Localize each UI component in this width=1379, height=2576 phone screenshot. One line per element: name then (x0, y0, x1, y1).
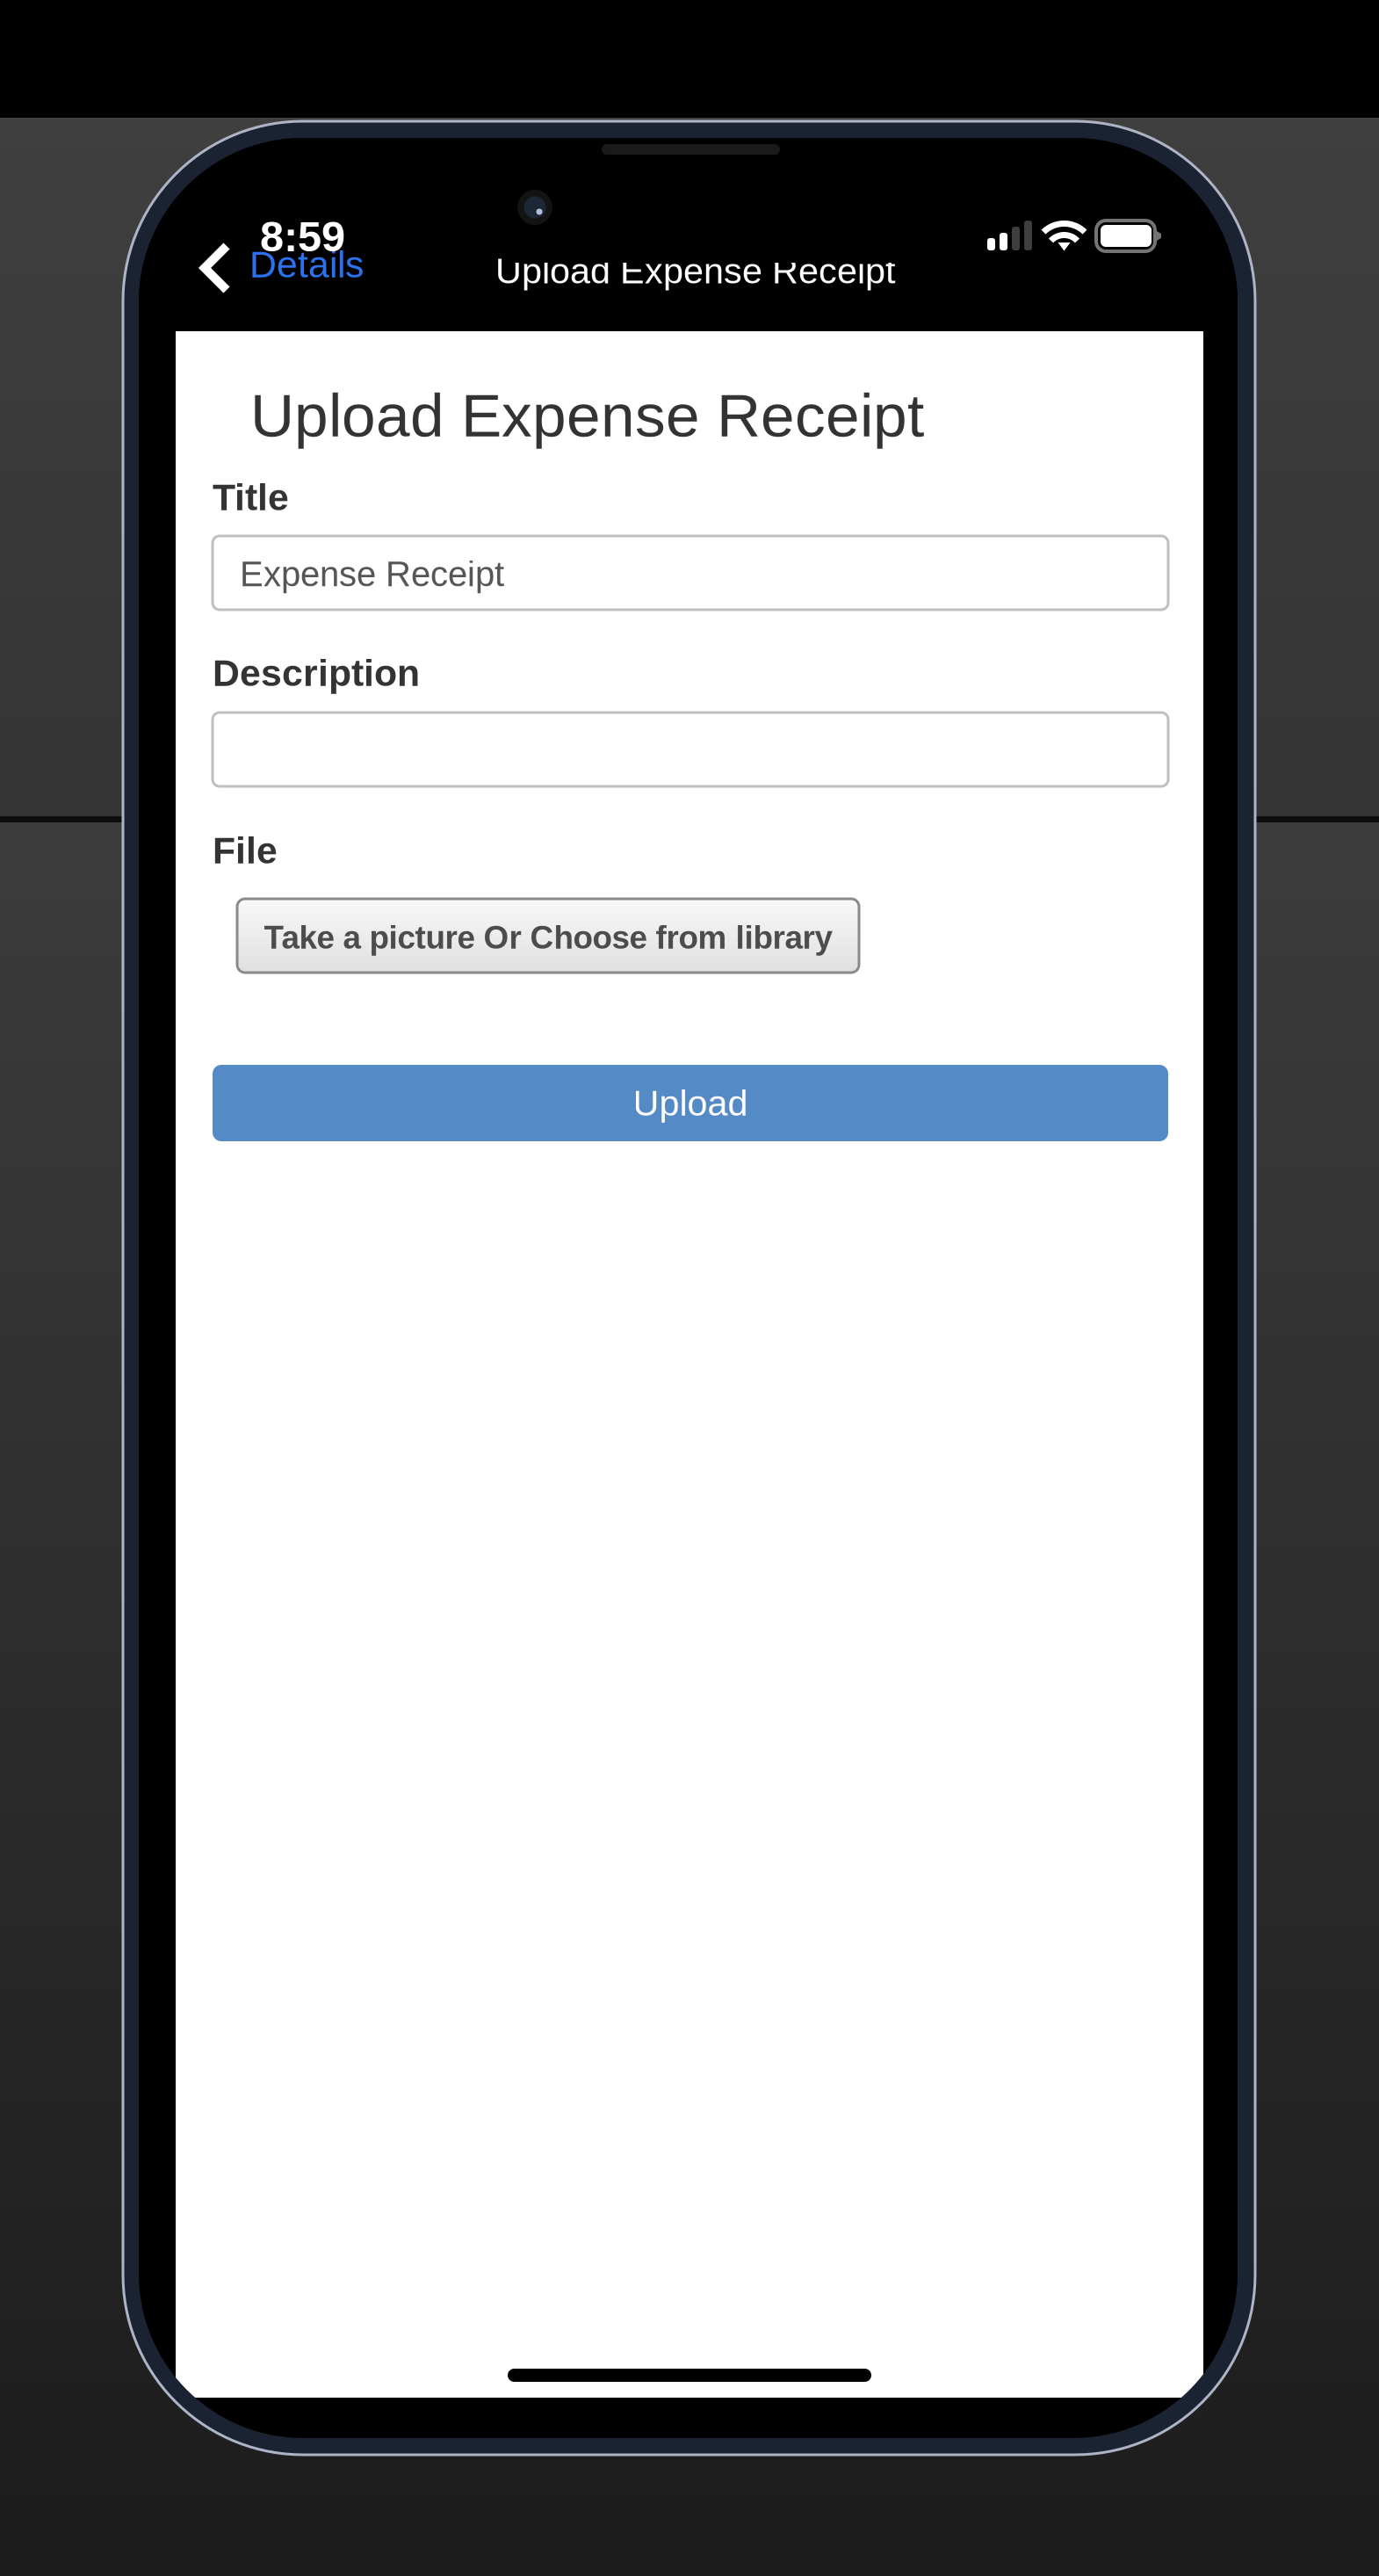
staticText: Upload Expense Receipt (250, 381, 924, 449)
staticText: Title (213, 476, 289, 518)
button[interactable]: Upload (213, 1065, 1168, 1141)
staticText: Take a picture Or Choose from library (264, 919, 832, 955)
staticText: Expense Receipt (240, 554, 504, 594)
staticText: Upload Expense Receipt (495, 250, 895, 291)
staticText: File (213, 829, 278, 871)
button[interactable]: Take a picture Or Choose from library (237, 899, 859, 973)
staticText: Description (213, 652, 420, 694)
staticText: Upload (633, 1083, 748, 1123)
staticText: 8:59 (260, 213, 345, 260)
button[interactable]: Details (190, 224, 427, 300)
staticText: Details (249, 243, 364, 285)
